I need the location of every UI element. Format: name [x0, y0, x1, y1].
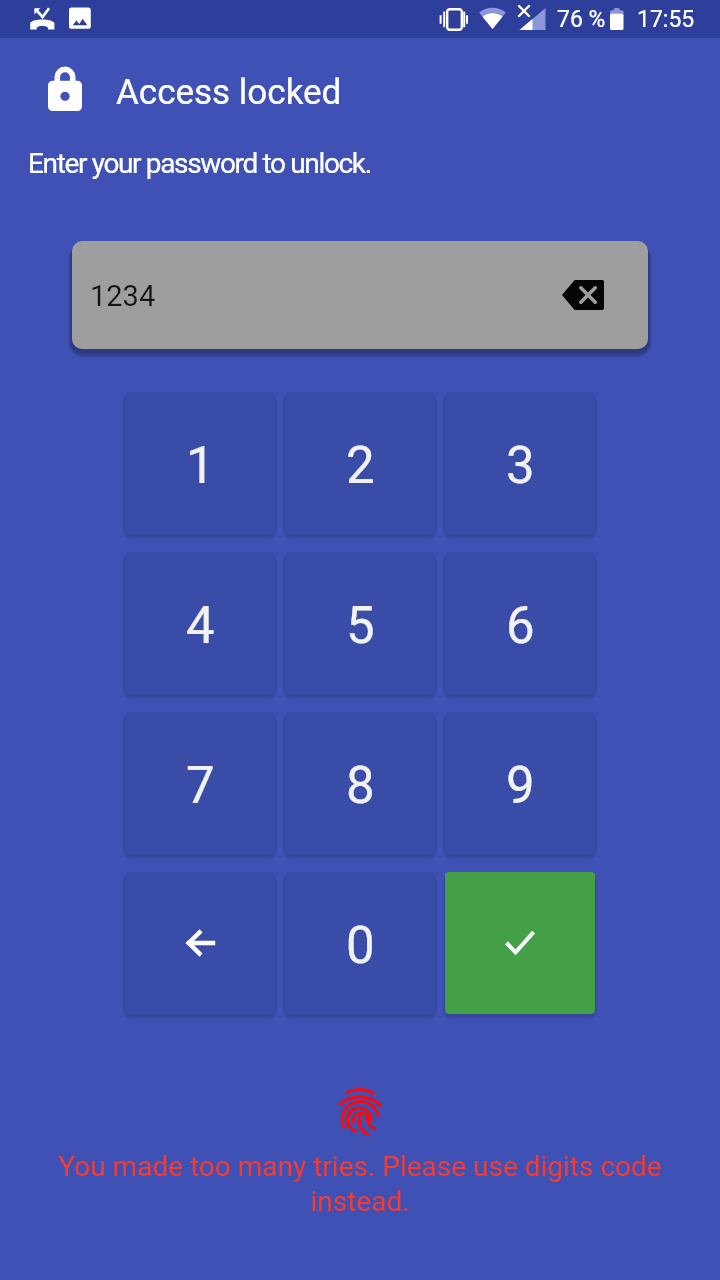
button[interactable]: 5 — [285, 552, 435, 694]
staticText: 1234 — [90, 279, 156, 313]
staticText: Access locked — [116, 72, 342, 113]
button[interactable]: 6 — [445, 552, 595, 694]
button[interactable]: Clear password — [562, 280, 604, 310]
button[interactable]: 1234 — [72, 241, 648, 349]
staticText: 1 — [186, 436, 215, 496]
button[interactable]: Confirm — [445, 872, 595, 1014]
staticText: 7 — [186, 756, 215, 816]
button[interactable]: 3 — [445, 392, 595, 534]
staticText: Enter your password to unlock. — [28, 147, 371, 180]
staticText: 8 — [346, 756, 375, 816]
staticText: 9 — [506, 756, 535, 816]
staticText: 3 — [506, 436, 535, 496]
staticText: 4 — [186, 596, 215, 656]
staticText: 6 — [506, 596, 535, 656]
button[interactable]: 4 — [125, 552, 275, 694]
button[interactable]: 7 — [125, 712, 275, 854]
staticText: 17:55 — [637, 6, 695, 33]
button[interactable]: 8 — [285, 712, 435, 854]
staticText: You made too many tries. Please use digi… — [51, 1150, 669, 1218]
button[interactable]: Delete — [125, 872, 275, 1014]
button[interactable]: 0 — [285, 872, 435, 1014]
button[interactable]: 9 — [445, 712, 595, 854]
button[interactable]: 1 — [125, 392, 275, 534]
staticText: 76 % — [557, 6, 606, 33]
staticText: 2 — [346, 436, 375, 496]
staticText: 0 — [346, 916, 375, 976]
button[interactable]: 2 — [285, 392, 435, 534]
staticText: 5 — [346, 596, 375, 656]
other: Fingerprint — [337, 1086, 384, 1137]
